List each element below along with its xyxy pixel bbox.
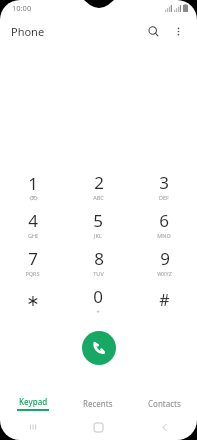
- staticText: #: [159, 289, 170, 311]
- staticText: 7: [28, 247, 38, 270]
- staticText: +: [96, 308, 100, 315]
- button[interactable]: 6: [131, 205, 197, 243]
- button[interactable]: Search: [140, 18, 166, 44]
- staticText: JKL: [94, 232, 102, 239]
- button[interactable]: 0: [65, 281, 131, 319]
- button[interactable]: #: [131, 281, 197, 319]
- staticText: Recents: [83, 398, 113, 409]
- staticText: WXYZ: [157, 270, 172, 277]
- staticText: 6: [159, 209, 169, 232]
- staticText: 4: [28, 209, 38, 232]
- staticText: GHI: [28, 232, 38, 239]
- staticText: Phone: [11, 24, 45, 39]
- staticText: Contacts: [148, 398, 181, 409]
- button[interactable]: 7: [0, 243, 65, 281]
- staticText: 1: [28, 172, 38, 195]
- button[interactable]: 5: [65, 205, 131, 243]
- button[interactable]: Call: [82, 331, 116, 365]
- staticText: MNO: [157, 232, 171, 239]
- button[interactable]: Home: [65, 414, 131, 440]
- staticText: DEF: [159, 194, 169, 201]
- button[interactable]: 4: [0, 205, 65, 243]
- staticText: Keypad: [19, 396, 48, 407]
- staticText: 3: [159, 171, 169, 194]
- button[interactable]: 8: [65, 243, 131, 281]
- button[interactable]: Keypad: [0, 392, 65, 414]
- staticText: 2: [94, 171, 104, 194]
- staticText: ABC: [93, 194, 104, 201]
- button[interactable]: 9: [131, 243, 197, 281]
- staticText: 10:00: [12, 3, 32, 13]
- staticText: PQRS: [25, 270, 40, 277]
- button[interactable]: Recent apps: [0, 414, 65, 440]
- staticText: 9: [160, 247, 170, 270]
- staticText: 8: [94, 247, 104, 270]
- staticText: ∗: [26, 291, 40, 310]
- staticText: 0: [93, 285, 103, 308]
- button[interactable]: Contacts: [131, 392, 197, 414]
- staticText: 5: [93, 209, 103, 232]
- button[interactable]: More options: [166, 19, 190, 43]
- button[interactable]: 2: [65, 167, 131, 205]
- button[interactable]: 1: [0, 167, 65, 205]
- staticText: TUV: [93, 270, 104, 277]
- button[interactable]: Back: [131, 414, 197, 440]
- button[interactable]: ∗: [0, 281, 65, 319]
- button[interactable]: 3: [131, 167, 197, 205]
- button[interactable]: Recents: [65, 392, 131, 414]
